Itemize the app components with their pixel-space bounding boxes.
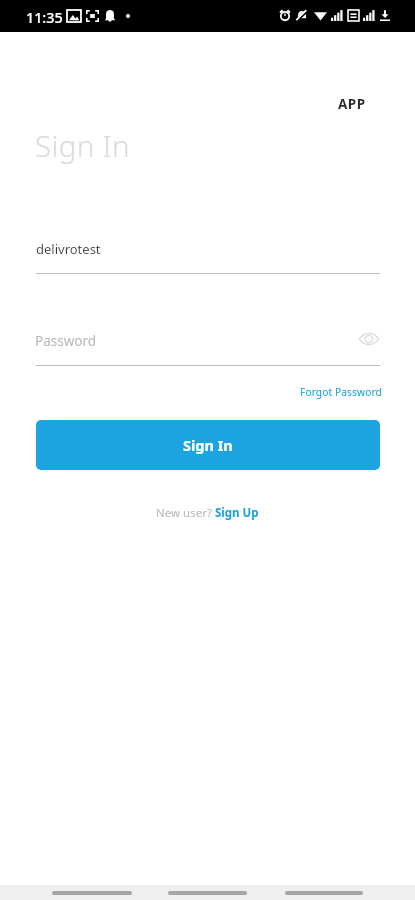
button[interactable]: Sign Up (215, 505, 259, 521)
button[interactable]: Recents (52, 885, 132, 900)
staticText: Sign In (35, 125, 131, 165)
button[interactable]: Home (168, 885, 247, 900)
button[interactable]: Forgot Password (282, 385, 382, 399)
staticText: New user? (156, 505, 215, 521)
button[interactable]: Show password (352, 326, 385, 352)
button[interactable]: Sign In (36, 420, 380, 470)
button[interactable]: Username (36, 235, 380, 273)
staticText: Password (35, 332, 97, 350)
staticText: Sign Up (215, 505, 259, 521)
button[interactable]: APP (316, 95, 366, 113)
staticText: APP (338, 95, 366, 113)
button[interactable]: Back (285, 885, 363, 900)
staticText: 11:35 (26, 8, 63, 27)
staticText: Sign In (183, 435, 233, 455)
staticText: delivrotest (36, 240, 101, 258)
staticText: Forgot Password (300, 385, 382, 399)
button[interactable]: Password (36, 327, 346, 365)
